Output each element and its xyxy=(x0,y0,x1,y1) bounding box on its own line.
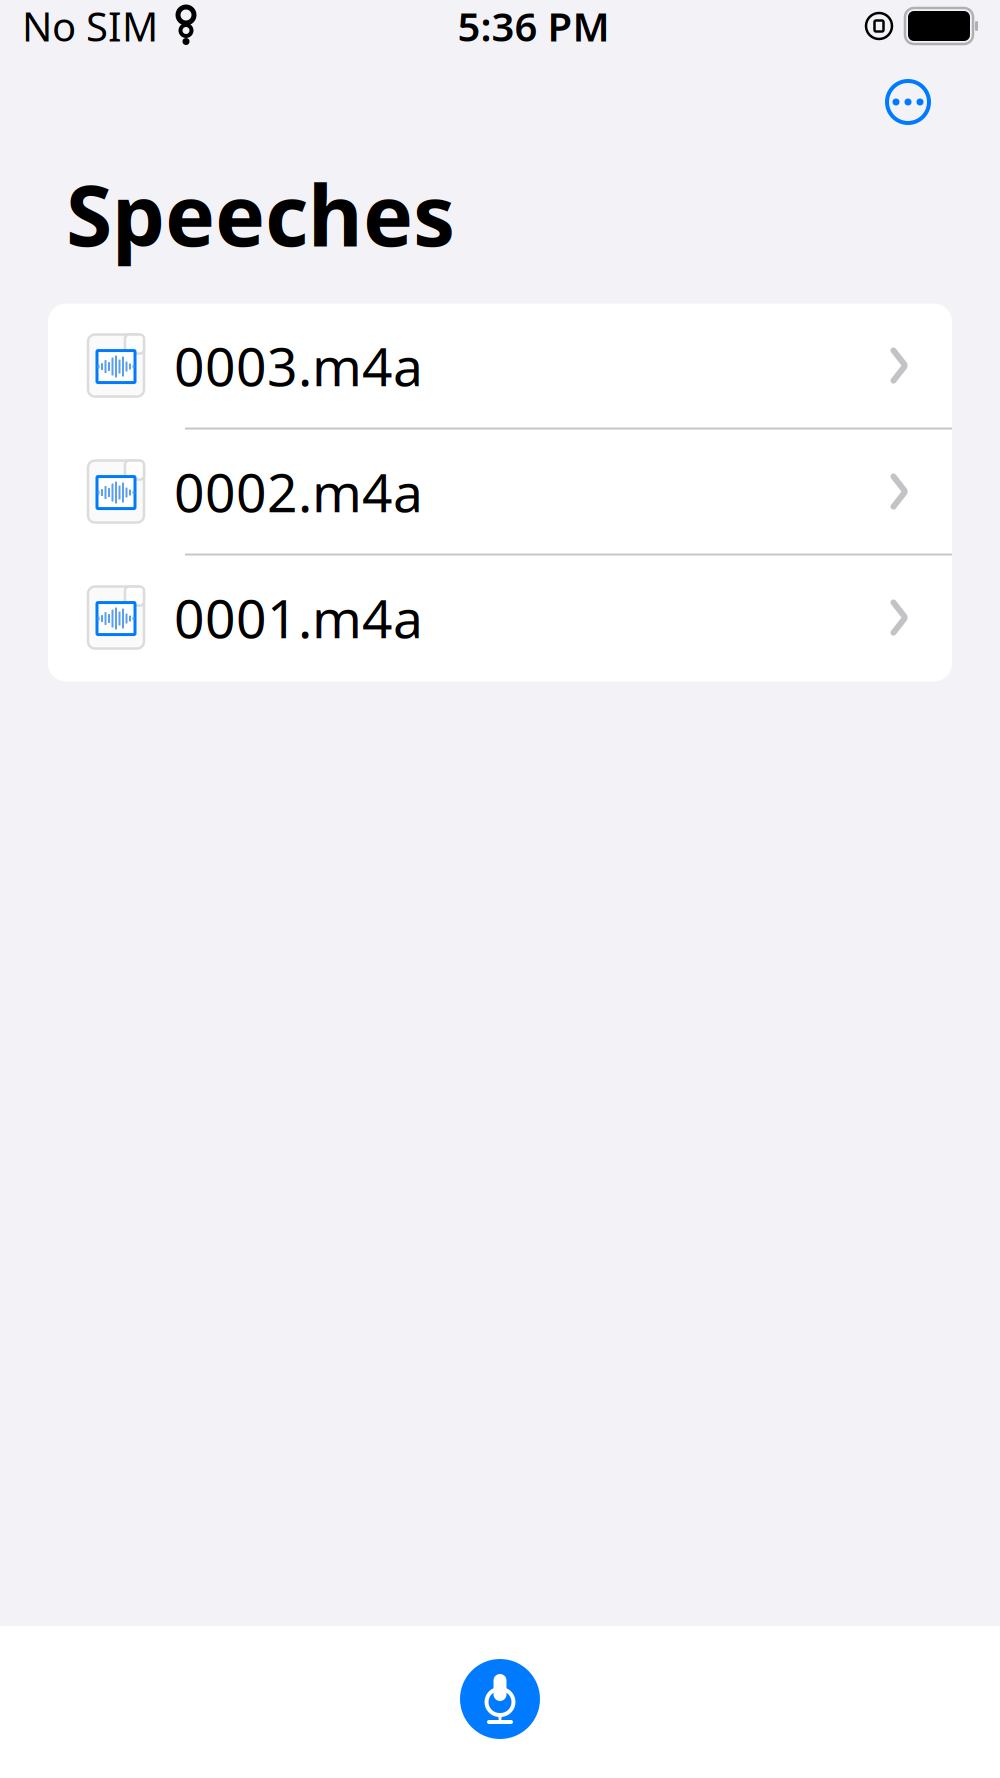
staticText: 0003.m4a xyxy=(174,330,423,401)
button[interactable]: More options xyxy=(876,70,940,134)
staticText: 5:36 PM xyxy=(457,0,609,52)
staticText: Speeches xyxy=(66,158,455,269)
button[interactable]: Record xyxy=(445,1644,555,1754)
staticText: No SIM xyxy=(22,0,158,52)
staticText: 0001.m4a xyxy=(174,582,423,653)
staticText: 0002.m4a xyxy=(174,456,423,527)
button[interactable]: 0001.m4a xyxy=(48,555,952,681)
button[interactable]: 0003.m4a xyxy=(48,303,952,429)
button[interactable]: 0002.m4a xyxy=(48,429,952,555)
